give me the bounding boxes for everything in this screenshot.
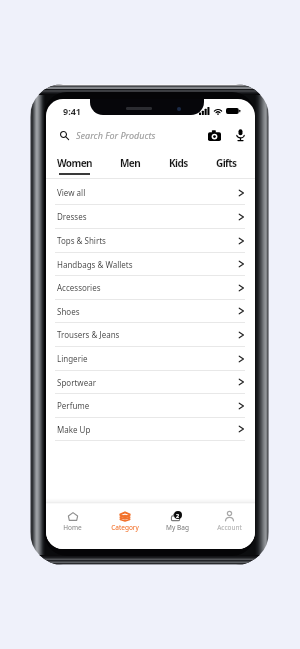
staticText: Women [57, 156, 92, 170]
button[interactable]: Account [203, 504, 255, 549]
button[interactable]: Perfume [46, 394, 255, 418]
staticText: Sportwear [57, 377, 96, 388]
staticText: Handbags & Wallets [57, 259, 133, 270]
button[interactable]: Lingerie [46, 347, 255, 371]
staticText: Kids [169, 156, 188, 170]
staticText: My Bag [166, 523, 189, 532]
staticText: Category [111, 523, 139, 532]
button[interactable]: 2 [151, 504, 203, 549]
staticText: View all [57, 187, 86, 198]
button[interactable]: Search by camera [208, 128, 221, 142]
staticText: Tops & Shirts [57, 235, 106, 246]
staticText: 9:41 [63, 105, 81, 117]
staticText: Home [63, 523, 82, 532]
button[interactable]: Handbags & Wallets [46, 253, 255, 276]
button[interactable]: View all [46, 181, 255, 205]
button[interactable]: Search [58, 129, 71, 142]
staticText: Perfume [57, 400, 90, 411]
staticText: Account [217, 523, 242, 532]
button[interactable]: Dresses [46, 205, 255, 229]
staticText: Accessories [57, 282, 101, 293]
staticText: Trousers & Jeans [57, 329, 120, 340]
staticText: Search For Products [76, 129, 156, 141]
button[interactable]: Gifts [216, 151, 237, 178]
button[interactable]: Shoes [46, 300, 255, 323]
button[interactable]: Men [120, 151, 141, 178]
staticText: Dresses [57, 211, 87, 222]
button[interactable]: Accessories [46, 276, 255, 300]
staticText: Lingerie [57, 353, 88, 364]
button[interactable]: Kids [169, 151, 188, 178]
button[interactable]: Trousers & Jeans [46, 323, 255, 347]
button[interactable]: Women [57, 151, 92, 178]
button[interactable]: Category [99, 504, 151, 549]
staticText: Men [120, 156, 141, 170]
button[interactable]: Home [46, 504, 99, 549]
staticText: Shoes [57, 306, 80, 317]
button[interactable]: Make Up [46, 418, 255, 441]
staticText: Gifts [216, 156, 237, 170]
button[interactable]: Sportwear [46, 371, 255, 394]
staticText: 2 [176, 512, 180, 519]
button[interactable]: Tops & Shirts [46, 229, 255, 253]
button[interactable]: Voice search [236, 128, 245, 142]
staticText: Make Up [57, 424, 91, 435]
